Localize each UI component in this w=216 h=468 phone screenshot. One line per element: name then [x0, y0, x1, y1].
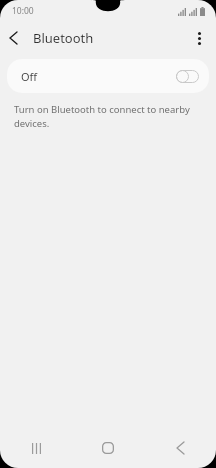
- button[interactable]: More options: [186, 25, 212, 51]
- button[interactable]: Back: [144, 428, 216, 468]
- staticText: 10:00: [12, 5, 34, 17]
- staticText: Turn on Bluetooth to connect to nearby d…: [14, 103, 190, 130]
- staticText: Bluetooth: [33, 29, 94, 47]
- button[interactable]: Off: [7, 59, 209, 93]
- staticText: Off: [21, 69, 38, 84]
- button[interactable]: Back: [0, 25, 26, 51]
- button[interactable]: Recent apps: [0, 428, 72, 468]
- button[interactable]: Home: [72, 428, 144, 468]
